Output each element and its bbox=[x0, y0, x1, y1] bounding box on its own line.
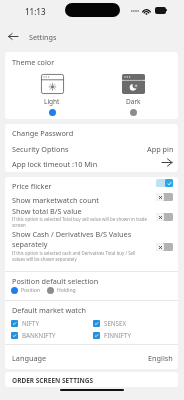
button[interactable]: Dark bbox=[112, 74, 154, 116]
button[interactable]: NIFTY bbox=[11, 319, 39, 327]
staticText: Position default selection bbox=[12, 276, 99, 286]
staticText: Language bbox=[12, 353, 47, 363]
staticText: ORDER SCREEN SETTINGS bbox=[12, 376, 93, 385]
button[interactable]: Toggle bbox=[156, 243, 173, 251]
staticText: 11:13 bbox=[25, 6, 46, 17]
staticText: Position bbox=[21, 287, 40, 294]
staticText: SENSEX bbox=[104, 319, 127, 327]
staticText: BANKNIFTY bbox=[22, 331, 56, 339]
button[interactable]: BANKNIFTY bbox=[11, 331, 56, 339]
staticText: Settings bbox=[29, 32, 57, 42]
button[interactable]: Light bbox=[31, 74, 73, 116]
staticText: Show marketwatch count bbox=[12, 195, 99, 205]
button[interactable]: SENSEX bbox=[93, 319, 127, 327]
button[interactable]: Toggle bbox=[156, 179, 173, 187]
staticText: App pin bbox=[147, 144, 174, 154]
staticText: Security Options bbox=[12, 144, 69, 154]
button[interactable]: Toggle bbox=[156, 193, 173, 201]
button[interactable]: ORDER SCREEN SETTINGS bbox=[5, 372, 178, 387]
staticText: Show total B/S value bbox=[12, 206, 82, 216]
staticText: Holding bbox=[57, 287, 76, 294]
staticText: Show Cash / Derivatives B/S Values separ… bbox=[12, 229, 132, 249]
staticText: If this option is selected Total buy sel… bbox=[12, 216, 147, 228]
staticText: NIFTY bbox=[22, 319, 39, 327]
staticText: Theme color bbox=[12, 57, 55, 67]
button[interactable]: FINNIFTY bbox=[93, 331, 131, 339]
button[interactable]: Toggle bbox=[156, 213, 173, 221]
staticText: Light bbox=[44, 97, 60, 106]
staticText: English bbox=[148, 353, 173, 363]
staticText: Dark bbox=[126, 97, 141, 106]
staticText: Change Password bbox=[12, 128, 74, 138]
button[interactable]: Position bbox=[11, 287, 40, 294]
button[interactable]: Back bbox=[4, 28, 21, 45]
staticText: If this option is selected cash and Deri… bbox=[12, 250, 136, 262]
staticText: App lock timeout :10 Min bbox=[12, 159, 98, 169]
staticText: Price flicker bbox=[12, 181, 52, 191]
staticText: FINNIFTY bbox=[104, 331, 131, 339]
staticText: Default market watch bbox=[12, 305, 86, 315]
button[interactable]: Holding bbox=[47, 287, 76, 294]
